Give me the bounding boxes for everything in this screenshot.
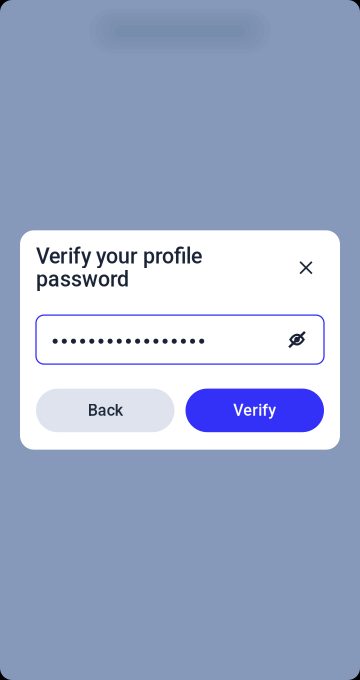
staticText: Verify your profile (36, 244, 202, 269)
button[interactable]: Verify (185, 389, 324, 432)
button[interactable]: Back (36, 389, 174, 432)
staticText: Verify (233, 401, 276, 420)
button[interactable]: Show password (286, 330, 308, 350)
staticText: Back (88, 401, 123, 420)
staticText: password (36, 267, 129, 292)
button[interactable]: Close (294, 256, 324, 280)
